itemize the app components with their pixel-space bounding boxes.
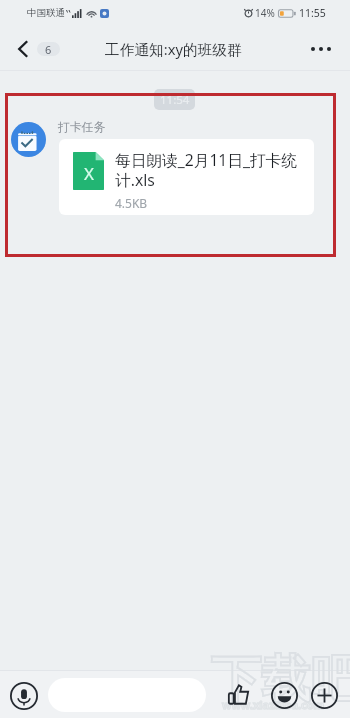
button[interactable]: Back [0,34,68,64]
staticText: X [84,162,94,185]
staticText: 中国联通 [27,7,65,19]
staticText: www.xiazaiba.com [222,697,325,712]
button[interactable]: Sender avatar [11,122,46,157]
button[interactable]: Emoji [271,682,298,709]
button[interactable]: Voice message [10,682,38,710]
staticText: 下载吧 [211,648,350,711]
staticText: 4.5KB [115,195,148,211]
staticText: 11:54 [160,92,190,108]
staticText: 每日朗读_2月11日_打卡统计.xls [115,149,303,191]
staticText: 11:55 [299,6,326,20]
staticText: 14% [255,6,275,20]
button[interactable]: More [311,682,338,709]
button[interactable]: X [59,139,314,215]
staticText: 工作通知:xy的班级群 [105,39,242,59]
button[interactable]: Message input [48,678,206,712]
staticText: 打卡任务 [58,120,106,135]
staticText: 6 [45,42,52,56]
button[interactable]: Like [228,684,249,705]
button[interactable]: More options [299,35,350,63]
